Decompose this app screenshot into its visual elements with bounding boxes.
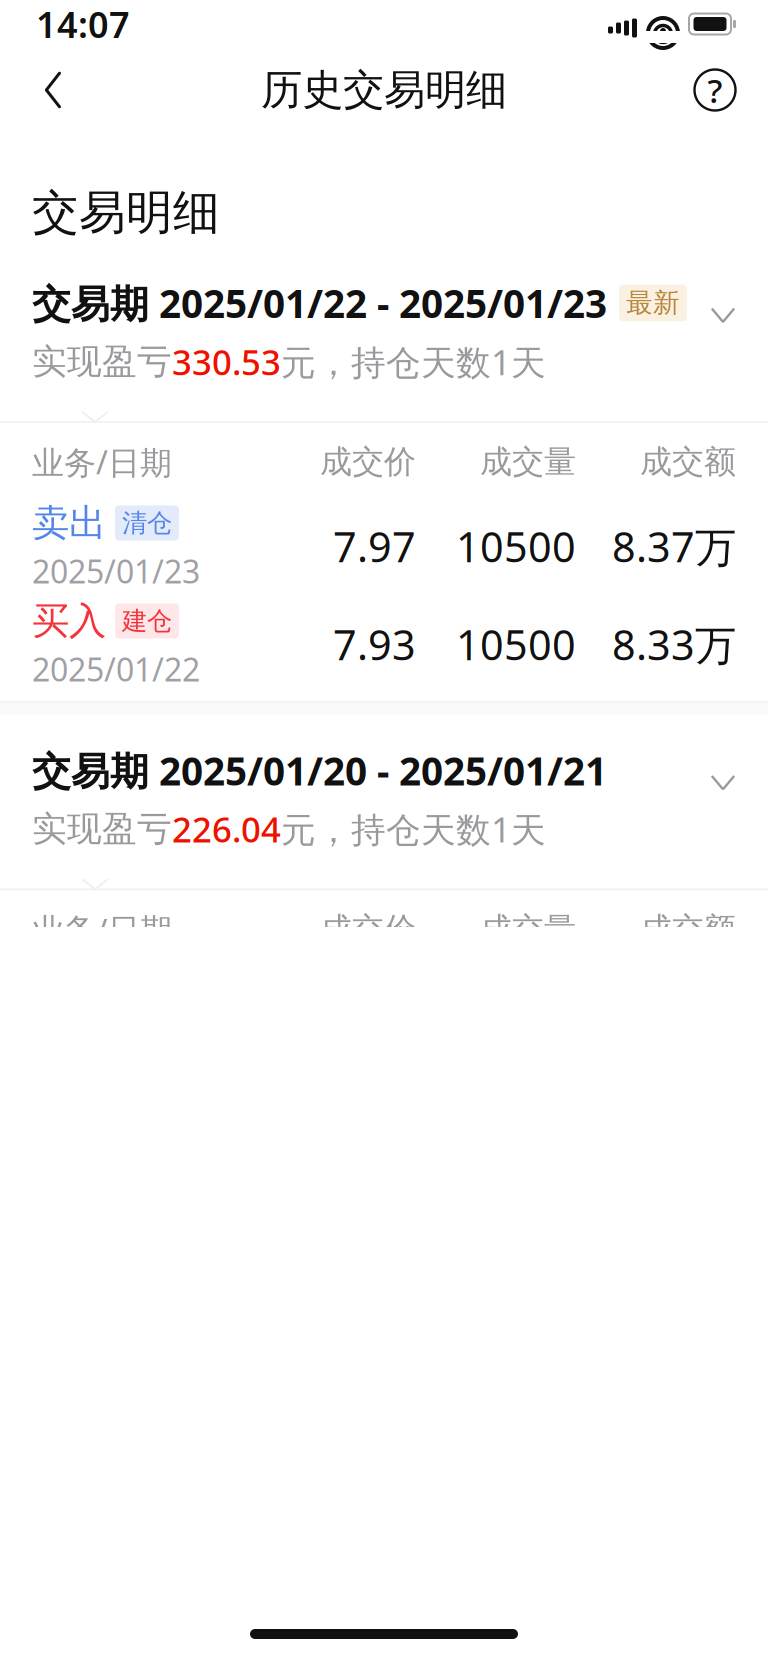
staticText: 330.53 [172, 339, 281, 385]
staticText: 226.04 [172, 806, 281, 852]
button[interactable]: 返回 [22, 59, 84, 121]
staticText: 卖出 [32, 500, 106, 546]
staticText: 建仓 [122, 605, 172, 636]
staticText: 实现盈亏 [32, 340, 172, 383]
staticText: 10500 [456, 617, 576, 672]
staticText: 8.33万 [612, 617, 736, 672]
staticText: ? [707, 68, 722, 112]
staticText: 成交额 [640, 442, 736, 482]
button[interactable]: 交易期 2025/01/22 - 2025/01/23 [0, 247, 768, 411]
staticText: 成交额 [640, 910, 736, 949]
staticText: 业务/日期 [32, 908, 172, 951]
staticText: 交易期 2025/01/20 - 2025/01/21 [32, 745, 607, 796]
staticText: 元，持仓天数1天 [281, 806, 546, 852]
staticText: 10500 [456, 519, 576, 574]
staticText: 7.93 [333, 617, 416, 672]
button[interactable]: 帮助 [684, 59, 746, 121]
staticText: 2025/01/23 [32, 550, 200, 592]
staticText: 元，持仓天数1天 [281, 339, 546, 385]
staticText: 8.37万 [612, 519, 736, 574]
staticText: 实现盈亏 [32, 808, 172, 850]
staticText: 成交量 [480, 442, 576, 482]
button[interactable]: 交易期 2025/01/20 - 2025/01/21 [0, 715, 768, 878]
staticText: 交易明细 [32, 184, 220, 241]
staticText: 清仓 [122, 507, 172, 538]
staticText: 交易期 2025/01/22 - 2025/01/23 [32, 277, 607, 329]
staticText: 买入 [32, 598, 106, 644]
staticText: 最新 [626, 287, 680, 319]
staticText: 7.97 [333, 519, 416, 574]
staticText: 成交量 [480, 910, 576, 949]
staticText: 历史交易明细 [261, 65, 507, 115]
staticText: 成交价 [320, 442, 416, 482]
staticText: 成交价 [320, 910, 416, 949]
staticText: 业务/日期 [32, 441, 172, 483]
staticText: 2025/01/22 [32, 648, 200, 690]
staticText: 14:07 [36, 0, 130, 48]
